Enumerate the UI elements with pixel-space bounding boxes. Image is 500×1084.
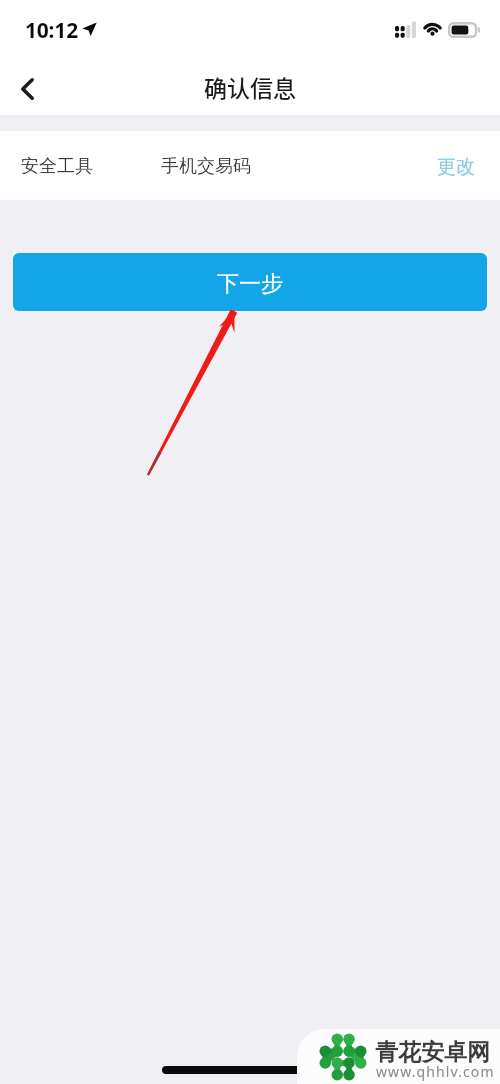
staticText: 确认信息 — [204, 70, 296, 103]
staticText: www.qhhlv.com — [376, 1062, 495, 1081]
staticText: 安全工具 — [21, 155, 93, 178]
staticText: 手机交易码 — [161, 155, 251, 178]
staticText: 10:12 — [25, 16, 78, 45]
staticText: 青花安卓网 — [375, 1038, 490, 1067]
staticText: 下一步 — [217, 270, 283, 298]
button[interactable]: 下一步 — [13, 253, 487, 311]
button[interactable]: 安全工具 — [0, 131, 500, 200]
button[interactable]: 更改 — [419, 133, 500, 200]
button[interactable]: Back — [6, 61, 50, 111]
staticText: 更改 — [437, 155, 475, 179]
